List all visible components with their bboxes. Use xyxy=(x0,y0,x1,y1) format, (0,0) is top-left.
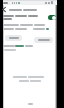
button[interactable] xyxy=(48,15,56,20)
button[interactable] xyxy=(5,35,22,41)
button[interactable] xyxy=(15,45,24,47)
button[interactable] xyxy=(34,37,53,43)
button[interactable] xyxy=(2,7,6,12)
button[interactable] xyxy=(46,28,49,30)
